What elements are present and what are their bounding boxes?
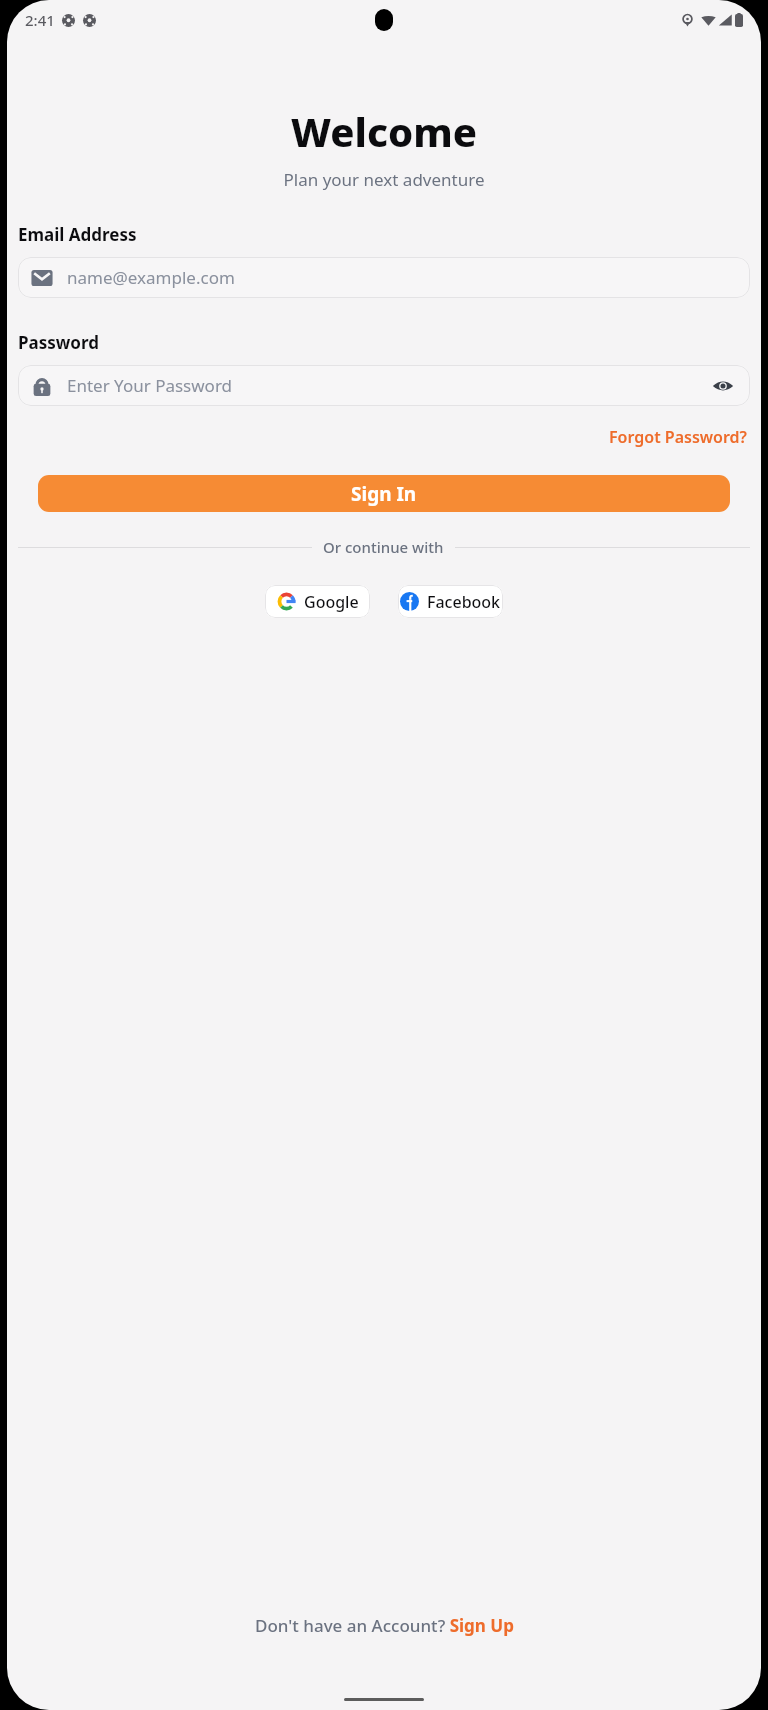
staticText: Forgot Password? bbox=[609, 426, 747, 448]
staticText: Sign In bbox=[351, 481, 417, 507]
staticText: Plan your next adventure bbox=[7, 168, 761, 191]
staticText: Enter Your Password bbox=[67, 374, 709, 397]
button[interactable]: Forgot Password? bbox=[606, 423, 750, 451]
button[interactable]: Sign In bbox=[38, 475, 730, 512]
staticText: Email Address bbox=[18, 223, 137, 246]
staticText: Facebook bbox=[427, 591, 501, 613]
button[interactable]: name@example.com bbox=[18, 257, 750, 298]
button[interactable]: Google bbox=[265, 585, 370, 618]
button[interactable]: Show password bbox=[709, 372, 737, 400]
button[interactable]: Don't have an Account? Sign Up bbox=[249, 1610, 520, 1641]
staticText: Don't have an Account? Sign Up bbox=[255, 1614, 514, 1637]
staticText: Google bbox=[304, 591, 359, 613]
staticText: Password bbox=[18, 331, 99, 354]
staticText: Welcome bbox=[7, 104, 761, 158]
staticText: 2:41 bbox=[25, 10, 55, 30]
staticText: Or continue with bbox=[323, 537, 444, 557]
button[interactable]: Facebook bbox=[398, 585, 503, 618]
staticText: name@example.com bbox=[67, 266, 737, 289]
button[interactable]: Enter Your Password bbox=[18, 365, 750, 406]
